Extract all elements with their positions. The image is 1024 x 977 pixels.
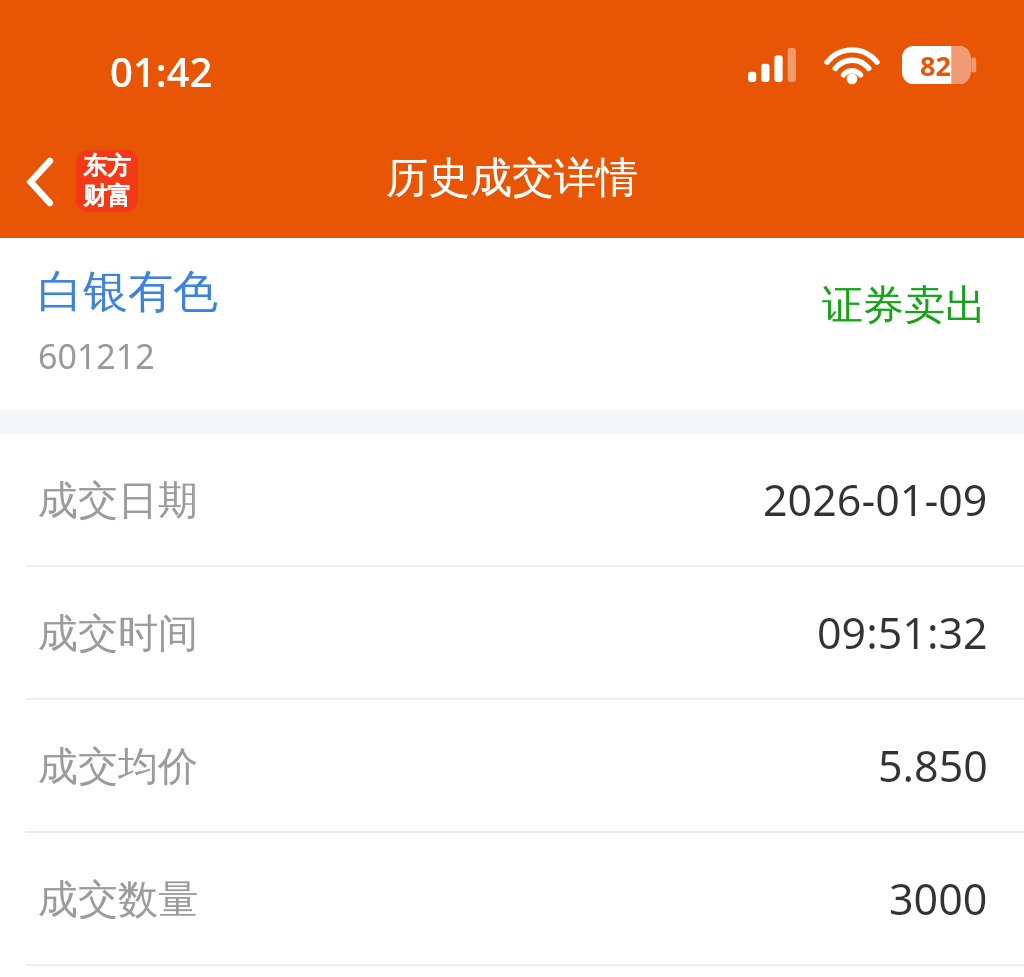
- staticText: 成交数量: [38, 874, 198, 924]
- staticText: 白银有色: [38, 264, 218, 321]
- staticText: 东: [83, 151, 107, 181]
- button[interactable]: 成交数量: [0, 833, 1024, 964]
- staticText: 成交均价: [38, 741, 198, 791]
- button[interactable]: 成交均价: [0, 700, 1024, 831]
- staticText: 601212: [38, 333, 155, 379]
- staticText: 证券卖出: [822, 280, 986, 332]
- staticText: 09:51:32: [817, 603, 988, 662]
- staticText: 5.850: [878, 736, 988, 795]
- staticText: 富: [107, 181, 131, 211]
- staticText: 方: [107, 151, 131, 181]
- staticText: 2026-01-09: [763, 470, 988, 529]
- staticText: 财: [83, 181, 107, 211]
- button[interactable]: 白银有色: [0, 238, 1024, 410]
- staticText: 01:42: [110, 44, 213, 98]
- button[interactable]: 成交日期: [0, 434, 1024, 565]
- staticText: 3000: [889, 869, 988, 928]
- staticText: 成交时间: [38, 608, 198, 658]
- staticText: 成交日期: [38, 475, 198, 525]
- button[interactable]: 成交时间: [0, 567, 1024, 698]
- staticText: 历史成交详情: [0, 152, 1024, 205]
- button[interactable]: East Money: [76, 150, 138, 212]
- staticText: 82: [920, 47, 951, 84]
- button[interactable]: Back: [12, 148, 70, 216]
